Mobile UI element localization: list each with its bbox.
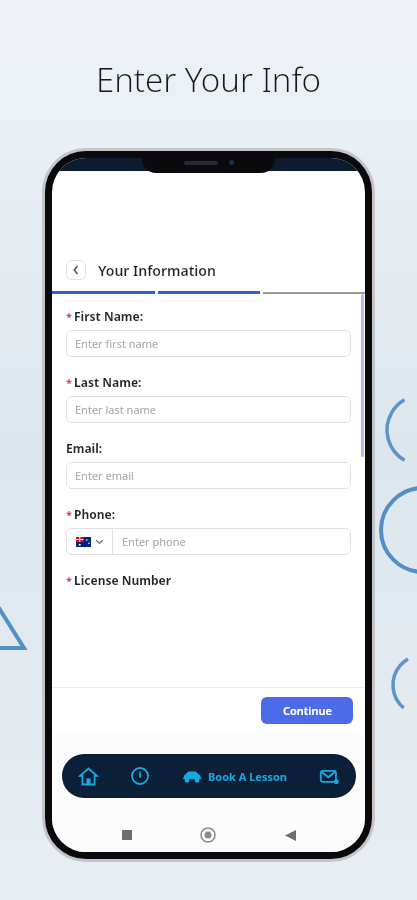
staticText: Email: — [66, 440, 103, 456]
staticText: Enter last name — [75, 402, 157, 417]
button[interactable]: Select country code — [66, 528, 112, 555]
staticText: * — [66, 375, 72, 390]
button[interactable]: Book A Lesson — [166, 754, 303, 798]
button[interactable]: Enter email — [66, 462, 351, 489]
staticText: License Number — [74, 572, 172, 588]
staticText: * — [66, 309, 72, 324]
button[interactable]: Messages — [303, 754, 356, 798]
staticText: Last Name: — [74, 374, 142, 390]
staticText: First Name: — [74, 308, 144, 324]
staticText: Continue — [283, 703, 332, 718]
staticText: Book A Lesson — [208, 769, 288, 784]
staticText: Phone: — [74, 506, 116, 522]
button[interactable]: Continue — [261, 697, 353, 724]
staticText: * — [66, 507, 72, 522]
button[interactable]: Info — [114, 754, 166, 798]
staticText: Enter first name — [75, 336, 159, 351]
staticText: * — [66, 573, 72, 588]
staticText: Enter Your Info — [0, 57, 417, 102]
staticText: Your Information — [98, 261, 216, 280]
button[interactable]: Enter first name — [66, 330, 351, 357]
button[interactable]: Enter phone — [113, 528, 351, 555]
button[interactable]: Home — [62, 754, 114, 798]
staticText: Enter phone — [122, 534, 186, 549]
button[interactable]: Back — [66, 260, 86, 280]
staticText: Enter email — [75, 468, 134, 483]
button[interactable]: Enter last name — [66, 396, 351, 423]
